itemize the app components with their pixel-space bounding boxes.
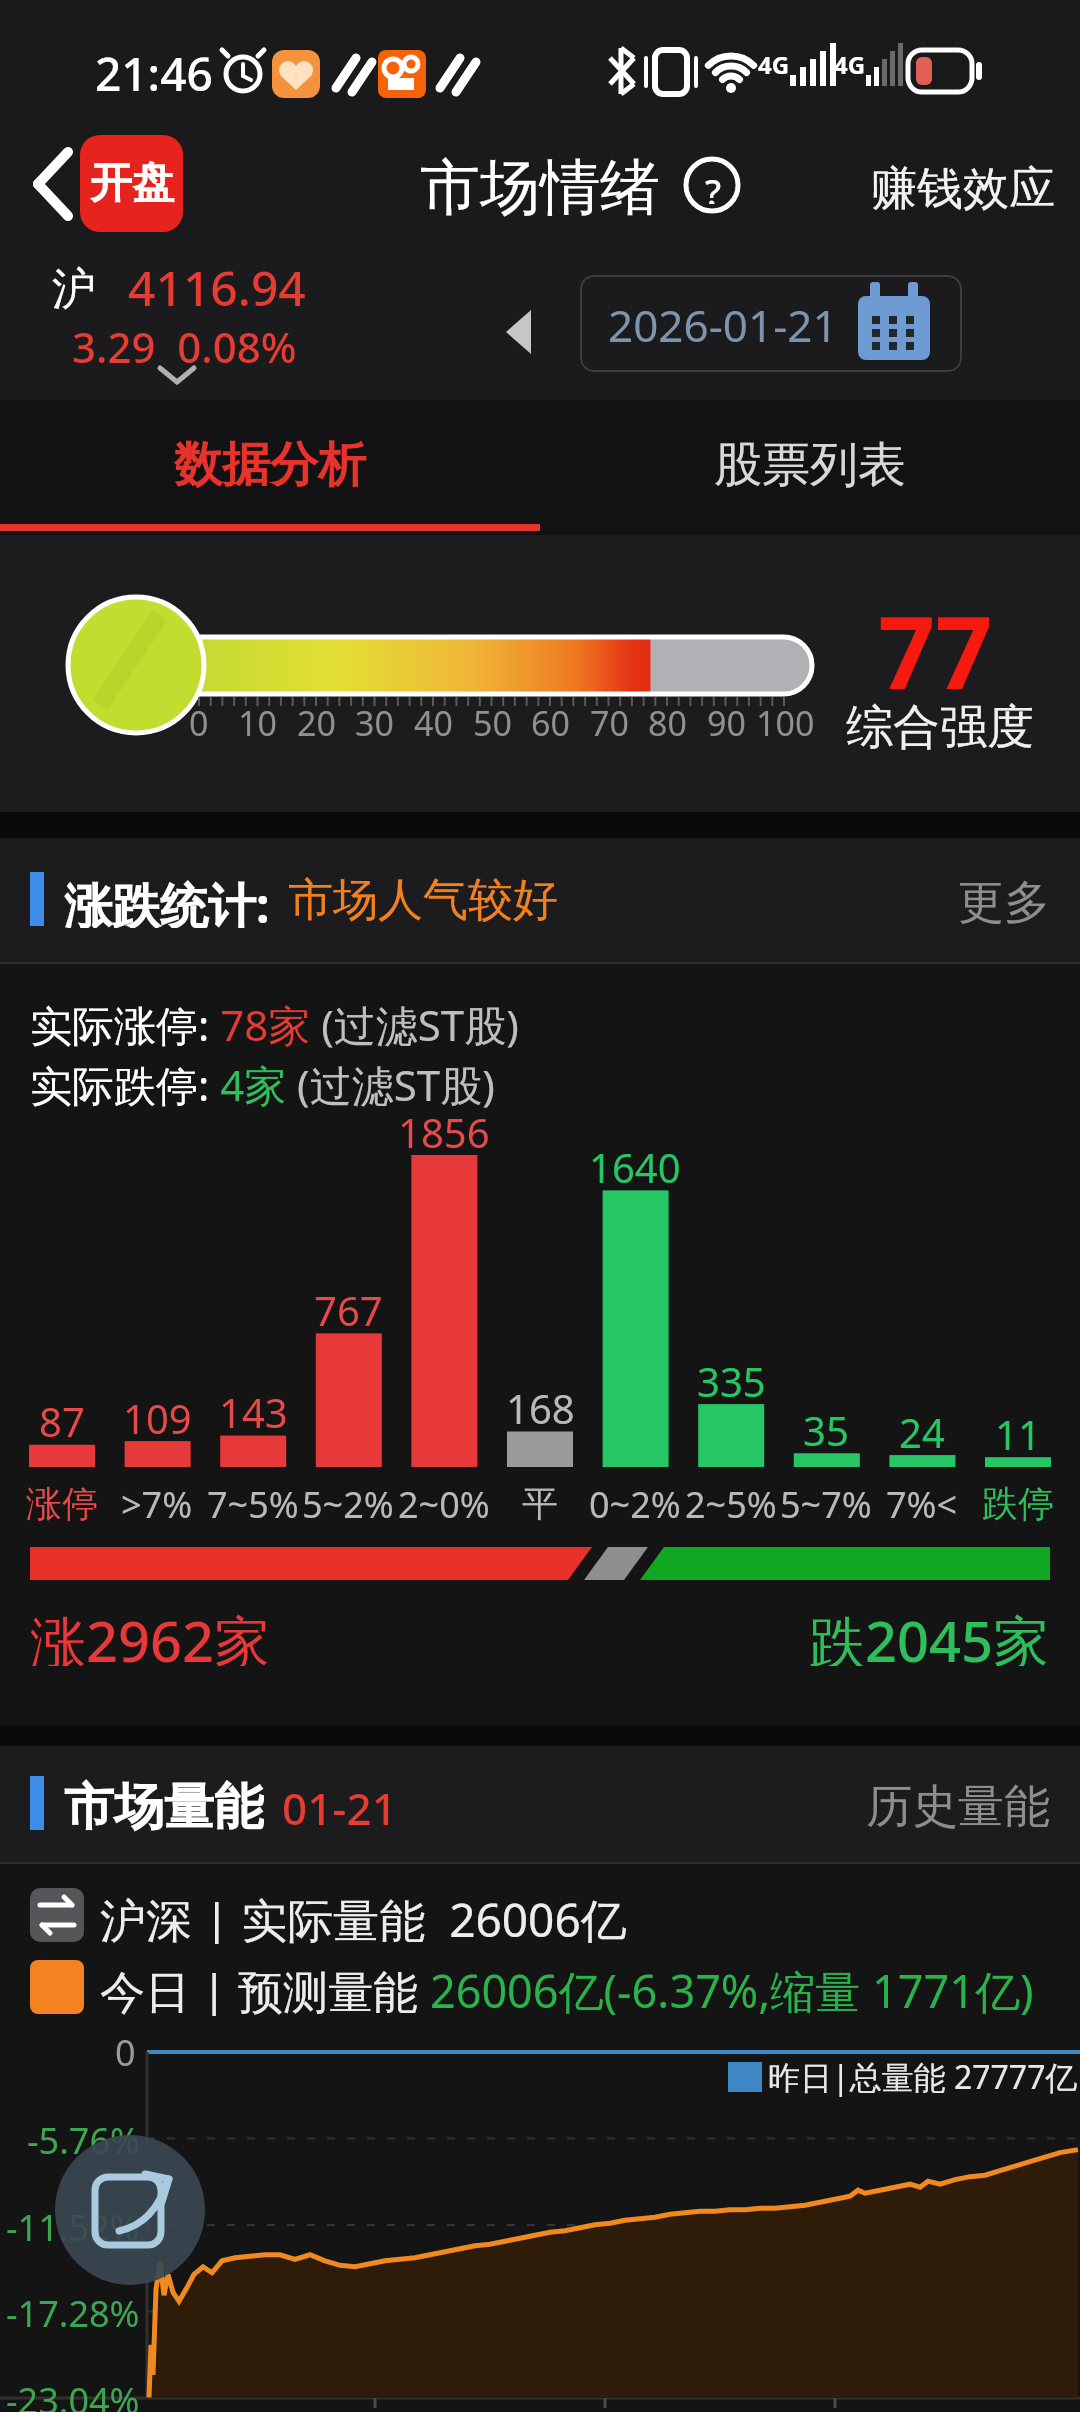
staticText: 30 — [355, 700, 394, 744]
staticText: 涨停 — [26, 1481, 98, 1526]
staticText: 跌停 — [982, 1481, 1054, 1526]
staticText: 股票列表 — [714, 435, 906, 495]
staticText: 跌2045家 — [809, 1602, 1050, 1666]
staticText: 5~7% — [780, 1480, 872, 1526]
staticText: 0 — [189, 700, 209, 744]
staticText: ? — [705, 168, 722, 204]
button[interactable]: 股票列表 — [540, 420, 1080, 510]
button[interactable]: 赚钱效应 — [860, 160, 1055, 212]
staticText: 7%< — [886, 1480, 958, 1526]
staticText: 11 — [995, 1407, 1041, 1453]
staticText: 今日 | 预测量能 26006亿(-6.37%,缩量 1771亿) — [100, 1960, 1034, 2016]
staticText: 20 — [297, 700, 336, 744]
staticText: 平 — [522, 1481, 558, 1526]
staticText: -5.76% — [27, 2116, 140, 2160]
staticText: 24 — [899, 1405, 945, 1451]
staticText: 35 — [803, 1403, 849, 1449]
staticText: 0~2% — [589, 1480, 681, 1526]
staticText: 50 — [473, 700, 512, 744]
staticText: 143 — [219, 1385, 288, 1431]
staticText: 335 — [697, 1354, 766, 1400]
staticText: 01-21 — [282, 1778, 397, 1832]
staticText: 21:46 — [95, 42, 213, 105]
staticText: 5~2% — [302, 1480, 394, 1526]
staticText: 沪深 | 实际量能 26006亿 — [100, 1888, 627, 1944]
staticText: >7% — [121, 1480, 193, 1526]
button[interactable]: 数据分析 — [0, 420, 540, 510]
button[interactable]: 开盘 — [80, 135, 183, 232]
staticText: 数据分析 — [174, 435, 366, 495]
staticText: 昨日|总量能 27777亿 — [768, 2055, 1078, 2099]
staticText: 市场情绪 — [420, 150, 660, 222]
staticText: -17.28% — [6, 2289, 140, 2333]
staticText: 4116.94 — [128, 255, 306, 317]
staticText: 10 — [238, 700, 277, 744]
staticText: -23.04% — [6, 2376, 140, 2412]
staticText: 涨跌统计: — [64, 872, 270, 928]
staticText: 2026-01-21 — [608, 295, 838, 353]
staticText: 40 — [414, 700, 453, 744]
staticText: 涨2962家 — [30, 1602, 271, 1666]
staticText: 沪 — [52, 262, 96, 312]
staticText: 80 — [648, 700, 687, 744]
staticText: 2~5% — [685, 1480, 777, 1526]
button[interactable]: 更多 — [940, 874, 1050, 926]
staticText: 0 — [115, 2028, 136, 2072]
staticText: 60 — [531, 700, 570, 744]
staticText: 767 — [314, 1283, 383, 1329]
staticText: 实际涨停: 78家 (过滤ST股) — [30, 996, 519, 1050]
staticText: 实际跌停: 4家 (过滤ST股) — [30, 1056, 495, 1110]
staticText: 77 — [878, 582, 993, 702]
staticText: 4G — [834, 48, 866, 78]
staticText: 更多 — [958, 874, 1050, 926]
staticText: 市场人气较好 — [288, 872, 558, 928]
staticText: 100 — [756, 700, 815, 744]
staticText: 2~0% — [398, 1480, 490, 1526]
staticText: 赚钱效应 — [871, 160, 1055, 212]
staticText: 1856 — [398, 1105, 490, 1151]
staticText: 1640 — [589, 1140, 681, 1186]
staticText: 90 — [707, 700, 746, 744]
staticText: 7~5% — [207, 1480, 299, 1526]
staticText: 168 — [506, 1381, 575, 1427]
staticText: 87 — [39, 1394, 85, 1440]
staticText: -11.52% — [6, 2203, 140, 2247]
staticText: 市场量能 — [64, 1776, 264, 1832]
button[interactable]: 历史量能 — [830, 1778, 1050, 1832]
staticText: 开盘 — [90, 157, 174, 210]
staticText: 109 — [123, 1391, 192, 1437]
staticText: 70 — [590, 700, 629, 744]
staticText: 3.29 0.08% — [72, 318, 297, 370]
staticText: 综合强度 — [846, 698, 1034, 754]
button[interactable] — [580, 275, 962, 372]
button[interactable] — [55, 2135, 205, 2285]
staticText: 历史量能 — [866, 1778, 1050, 1832]
staticText: 4G — [758, 48, 790, 78]
